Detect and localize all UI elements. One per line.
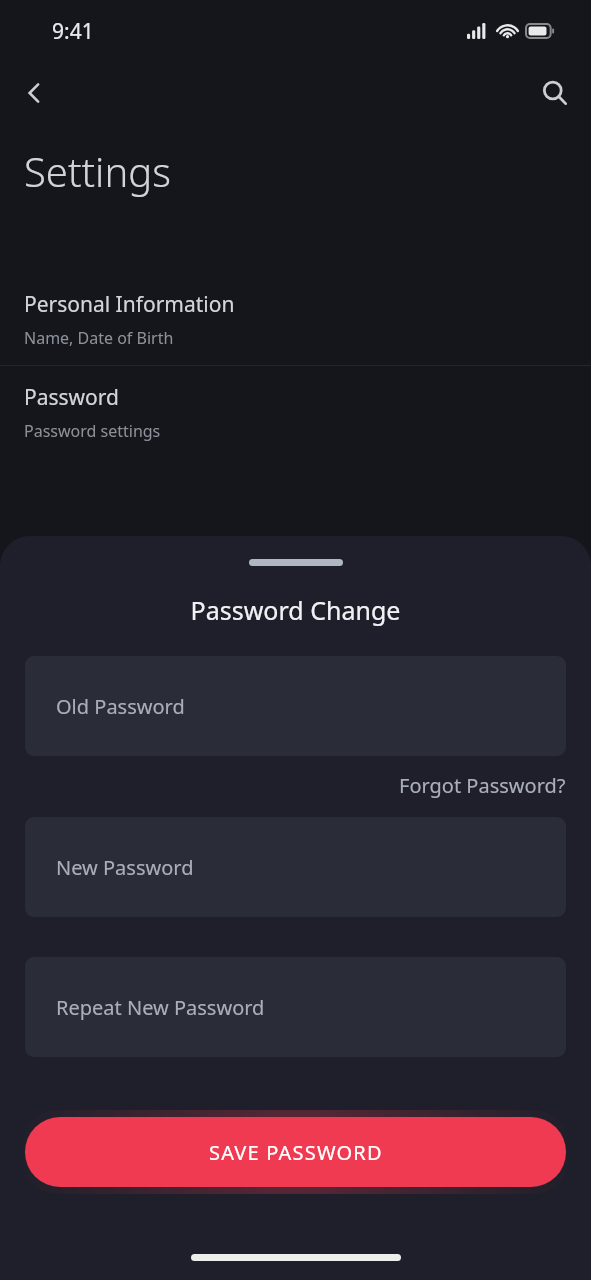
staticText: Password settings (24, 420, 161, 442)
button[interactable]: Old Password (25, 656, 566, 756)
staticText: Password Change (0, 593, 591, 627)
button[interactable]: Repeat New Password (25, 957, 566, 1057)
button[interactable]: Back (10, 69, 58, 117)
button[interactable]: SAVE PASSWORD (25, 1117, 566, 1187)
staticText: Name, Date of Birth (24, 327, 174, 349)
staticText: Repeat New Password (56, 994, 265, 1021)
button[interactable]: Forgot Password? (399, 772, 566, 799)
staticText: 9:41 (52, 17, 94, 46)
staticText: Personal Information (24, 290, 235, 319)
staticText: SAVE PASSWORD (209, 1139, 383, 1166)
staticText: New Password (56, 854, 194, 881)
staticText: Settings (24, 144, 171, 198)
button[interactable]: Password (0, 379, 591, 446)
staticText: Password (24, 383, 119, 412)
staticText: Old Password (56, 693, 185, 720)
button[interactable]: Personal Information (0, 286, 591, 353)
button[interactable]: Search (531, 69, 579, 117)
button[interactable]: New Password (25, 817, 566, 917)
